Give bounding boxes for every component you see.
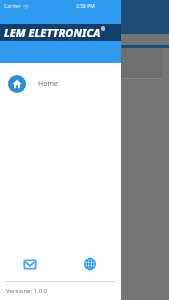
button[interactable]: Email: [0, 247, 60, 281]
button[interactable]: Home: [0, 63, 121, 105]
staticText: ®: [101, 26, 106, 33]
staticText: Versione: 1.0.0: [6, 287, 48, 295]
staticText: LEM ELETTRONICA: [4, 25, 101, 40]
staticText: 2:58 PM: [76, 3, 95, 10]
button[interactable]: Website: [60, 247, 120, 281]
staticText: Carrier: [4, 3, 21, 10]
staticText: Home: [38, 79, 58, 89]
